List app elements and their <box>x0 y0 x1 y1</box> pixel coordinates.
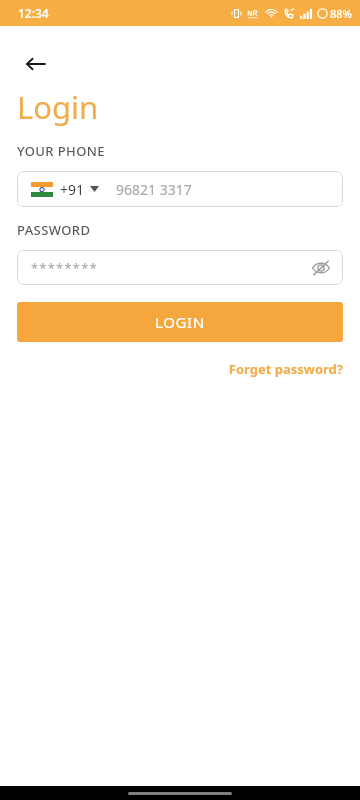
staticText: Login <box>17 86 99 128</box>
button[interactable]: LOGIN <box>17 302 343 342</box>
button[interactable]: Forget password? <box>228 360 343 378</box>
staticText: PASSWORD <box>17 221 91 239</box>
button[interactable]: Back <box>16 44 56 84</box>
staticText: 96821 3317 <box>116 180 192 199</box>
staticText: 12:34 <box>18 5 49 21</box>
button[interactable]: +91 <box>17 171 343 207</box>
button[interactable]: ******** <box>17 250 343 285</box>
staticText: ******** <box>31 259 98 277</box>
staticText: Forget password? <box>228 360 343 378</box>
staticText: YOUR PHONE <box>17 142 105 160</box>
staticText: LOGIN <box>155 312 205 332</box>
button[interactable]: Show password <box>305 252 337 284</box>
staticText: 88% <box>330 6 352 21</box>
staticText: +91 <box>60 180 85 199</box>
